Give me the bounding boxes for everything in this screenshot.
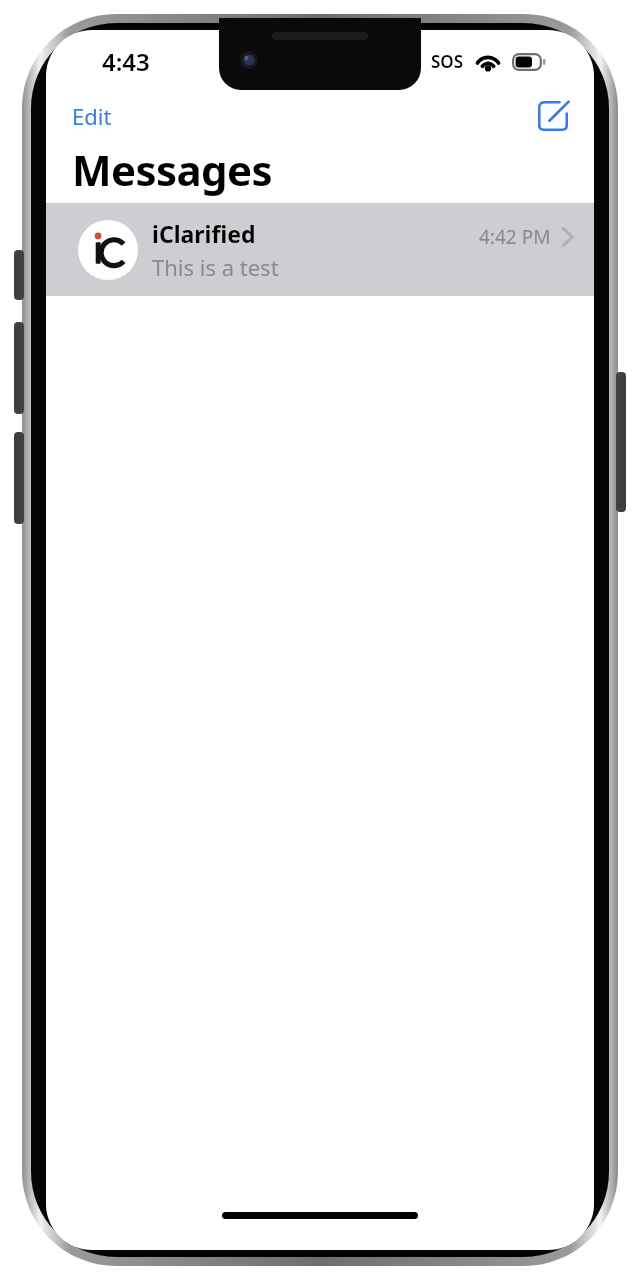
staticText: 4:42 PM (479, 224, 551, 250)
staticText: iClarified (152, 218, 256, 249)
staticText: This is a test (152, 252, 279, 282)
staticText: Messages (72, 141, 272, 198)
button[interactable]: Compose new message (530, 93, 576, 139)
staticText: Edit (72, 101, 112, 131)
button[interactable]: iClarified (46, 203, 594, 296)
staticText: 4:43 (102, 45, 150, 78)
button[interactable]: Edit (60, 95, 124, 137)
staticText: SOS (431, 50, 464, 73)
